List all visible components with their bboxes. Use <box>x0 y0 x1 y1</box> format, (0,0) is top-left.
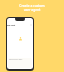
button[interactable]: Describe your agent <box>8 58 32 68</box>
staticText: New Agent <box>7 24 16 26</box>
staticText: Create a custom user agent <box>0 4 64 12</box>
staticText: Describe your agent <box>9 59 23 61</box>
button[interactable]: New Agent <box>7 24 16 26</box>
